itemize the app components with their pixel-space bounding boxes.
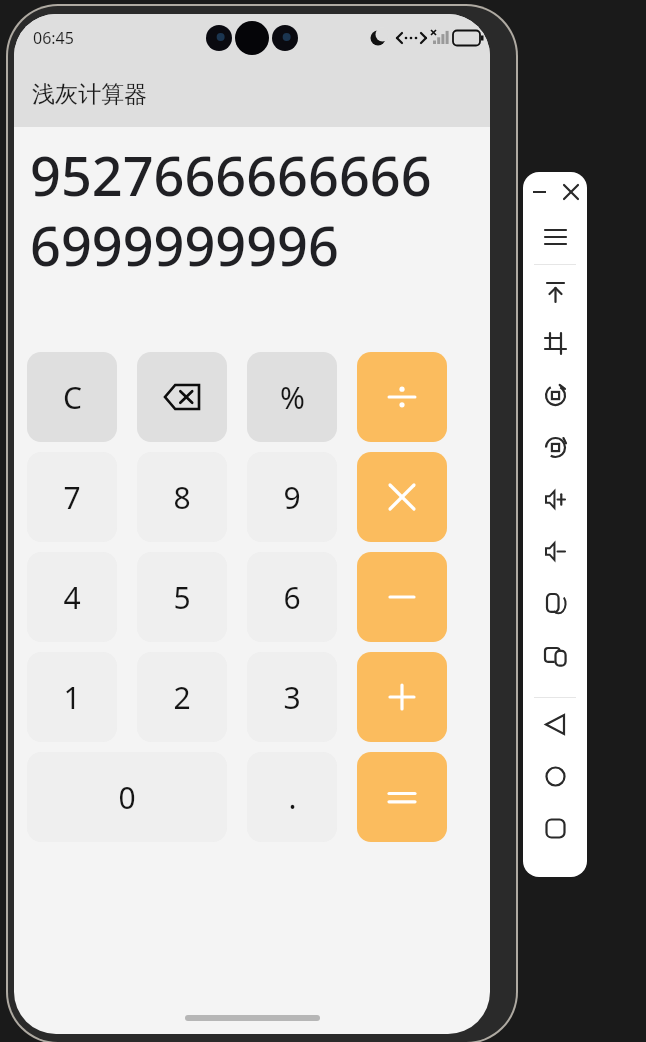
staticText: 9 <box>283 477 301 518</box>
button[interactable] <box>357 452 447 542</box>
button[interactable]: 3 <box>247 652 337 742</box>
staticText: 浅灰计算器 <box>32 80 147 109</box>
staticText: 0 <box>118 777 136 818</box>
staticText: C <box>63 377 82 418</box>
button[interactable]: . <box>247 752 337 842</box>
staticText: 8 <box>173 477 191 518</box>
button[interactable]: Menu <box>523 212 587 264</box>
staticText: 06:45 <box>33 27 74 49</box>
button[interactable] <box>357 552 447 642</box>
button[interactable]: Crop <box>523 317 587 369</box>
button[interactable]: Close <box>555 172 587 212</box>
staticText: % <box>280 377 305 418</box>
button[interactable]: Volume up <box>523 473 587 525</box>
button[interactable]: Cast to device <box>523 629 587 681</box>
button[interactable]: C <box>27 352 117 442</box>
button[interactable]: Scroll to top <box>523 265 587 317</box>
staticText: 7 <box>63 477 81 518</box>
button[interactable]: Back <box>523 698 587 750</box>
button[interactable]: Rotate screen <box>523 577 587 629</box>
button[interactable]: 0 <box>27 752 227 842</box>
button[interactable]: 2 <box>137 652 227 742</box>
button[interactable]: Rotate left <box>523 369 587 421</box>
staticText: . <box>288 777 297 818</box>
staticText: 6 <box>283 577 301 618</box>
button[interactable]: 9 <box>247 452 337 542</box>
staticText: 2 <box>173 677 191 718</box>
staticText: 4 <box>63 577 81 618</box>
staticText: 5 <box>173 577 191 618</box>
button[interactable]: 5 <box>137 552 227 642</box>
button[interactable]: 7 <box>27 452 117 542</box>
button[interactable]: 8 <box>137 452 227 542</box>
button[interactable] <box>357 352 447 442</box>
button[interactable]: Volume down <box>523 525 587 577</box>
button[interactable] <box>357 652 447 742</box>
button[interactable]: Recents <box>523 802 587 854</box>
button[interactable] <box>357 752 447 842</box>
button[interactable]: 4 <box>27 552 117 642</box>
button[interactable]: Rotate right <box>523 421 587 473</box>
staticText: 3 <box>283 677 301 718</box>
button[interactable]: % <box>247 352 337 442</box>
button[interactable]: 6 <box>247 552 337 642</box>
button[interactable]: Minimize <box>523 172 555 212</box>
button[interactable]: 1 <box>27 652 117 742</box>
staticText: 9527666666666 6999999996 <box>30 138 432 282</box>
staticText: 1 <box>63 677 81 718</box>
button[interactable]: Home <box>523 750 587 802</box>
button[interactable]: Backspace <box>137 352 227 442</box>
